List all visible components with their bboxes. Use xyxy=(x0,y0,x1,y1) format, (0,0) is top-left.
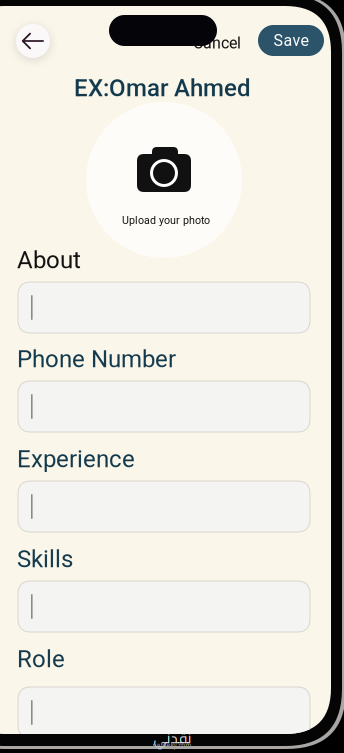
button[interactable]: Cancel xyxy=(193,35,242,51)
staticText: Skills xyxy=(17,545,73,573)
staticText: Save xyxy=(273,31,308,50)
button[interactable] xyxy=(18,481,310,532)
button[interactable]: About xyxy=(17,246,81,274)
button[interactable]: Save xyxy=(258,25,324,56)
button[interactable] xyxy=(18,282,310,333)
staticText: Upload your photo xyxy=(122,214,210,226)
button[interactable]: Upload your photo xyxy=(86,102,242,258)
button[interactable]: Role xyxy=(17,645,65,673)
button[interactable]: Experience xyxy=(17,445,135,473)
button[interactable] xyxy=(18,687,310,738)
button[interactable] xyxy=(18,381,310,432)
staticText: Cancel xyxy=(193,34,241,52)
button[interactable]: Phone Number xyxy=(17,345,176,373)
button[interactable]: Back xyxy=(16,24,50,58)
staticText: nafeeky.com xyxy=(152,742,191,749)
staticText: نقدني xyxy=(153,724,191,752)
button[interactable] xyxy=(18,581,310,632)
button[interactable]: Skills xyxy=(17,545,73,573)
staticText: EX:Omar Ahmed xyxy=(74,74,251,102)
staticText: About xyxy=(17,246,81,274)
staticText: Role xyxy=(17,645,65,673)
staticText: Phone Number xyxy=(17,345,176,373)
staticText: Experience xyxy=(17,445,135,473)
